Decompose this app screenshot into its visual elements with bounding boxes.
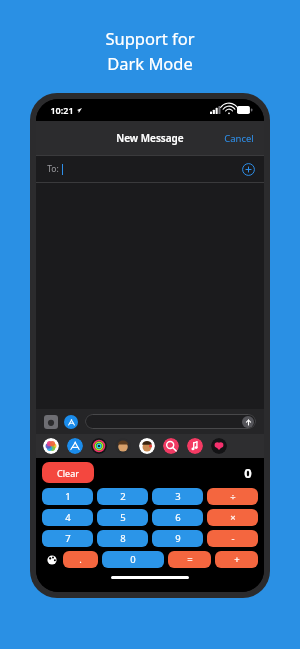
button[interactable]: To: bbox=[36, 156, 264, 182]
button[interactable]: 6 bbox=[152, 509, 203, 526]
button[interactable]: Add contact bbox=[242, 163, 255, 176]
button[interactable]: Send bbox=[242, 416, 254, 428]
staticText: To: bbox=[47, 163, 59, 175]
button[interactable]: Cancel bbox=[214, 126, 264, 151]
staticText: 4 bbox=[65, 511, 71, 524]
button[interactable]: . bbox=[63, 551, 98, 568]
staticText: . bbox=[79, 553, 82, 566]
button[interactable]: + bbox=[215, 551, 258, 568]
button[interactable]: Send bbox=[85, 414, 256, 429]
button[interactable]: App Store bbox=[67, 438, 83, 454]
button[interactable]: Photos bbox=[43, 438, 59, 454]
button[interactable]: ÷ bbox=[207, 488, 258, 505]
button[interactable]: Theme bbox=[42, 551, 61, 568]
button[interactable]: App Store bbox=[64, 415, 78, 429]
staticText: New Message bbox=[116, 131, 184, 145]
button[interactable]: 1 bbox=[42, 488, 93, 505]
staticText: 7 bbox=[65, 532, 71, 545]
staticText: + bbox=[234, 553, 240, 566]
staticText: 10:21 bbox=[50, 104, 74, 116]
button[interactable]: Health bbox=[211, 438, 227, 454]
staticText: 1 bbox=[65, 490, 71, 503]
staticText: Dark Mode bbox=[107, 52, 193, 74]
staticText: 3 bbox=[175, 490, 181, 503]
button[interactable]: 8 bbox=[97, 530, 148, 547]
button[interactable]: 7 bbox=[42, 530, 93, 547]
button[interactable]: Camera bbox=[44, 415, 58, 429]
button[interactable]: Clear bbox=[42, 462, 94, 483]
staticText: × bbox=[230, 511, 236, 524]
staticText: Cancel bbox=[224, 132, 254, 145]
staticText: - bbox=[231, 532, 235, 545]
button[interactable]: = bbox=[168, 551, 211, 568]
button[interactable]: × bbox=[207, 509, 258, 526]
button[interactable]: Images bbox=[163, 438, 179, 454]
staticText: Support for bbox=[105, 27, 195, 49]
button[interactable]: 0 bbox=[102, 551, 164, 568]
button[interactable]: 5 bbox=[97, 509, 148, 526]
staticText: ÷ bbox=[230, 490, 236, 503]
button[interactable]: Memoji 2 bbox=[139, 438, 155, 454]
staticText: 6 bbox=[175, 511, 181, 524]
button[interactable]: 3 bbox=[152, 488, 203, 505]
button[interactable]: 4 bbox=[42, 509, 93, 526]
button[interactable]: - bbox=[207, 530, 258, 547]
staticText: 2 bbox=[120, 490, 126, 503]
staticText: 5 bbox=[120, 511, 126, 524]
staticText: Clear bbox=[57, 467, 79, 479]
button[interactable]: Music bbox=[187, 438, 203, 454]
button[interactable]: Fitness bbox=[91, 438, 107, 454]
staticText: 9 bbox=[175, 532, 181, 545]
staticText: 0 bbox=[130, 553, 136, 566]
staticText: = bbox=[187, 553, 193, 566]
staticText: 8 bbox=[120, 532, 126, 545]
button[interactable]: Memoji bbox=[115, 438, 131, 454]
button[interactable]: 2 bbox=[97, 488, 148, 505]
button[interactable]: 9 bbox=[152, 530, 203, 547]
staticText: 0 bbox=[244, 464, 252, 482]
